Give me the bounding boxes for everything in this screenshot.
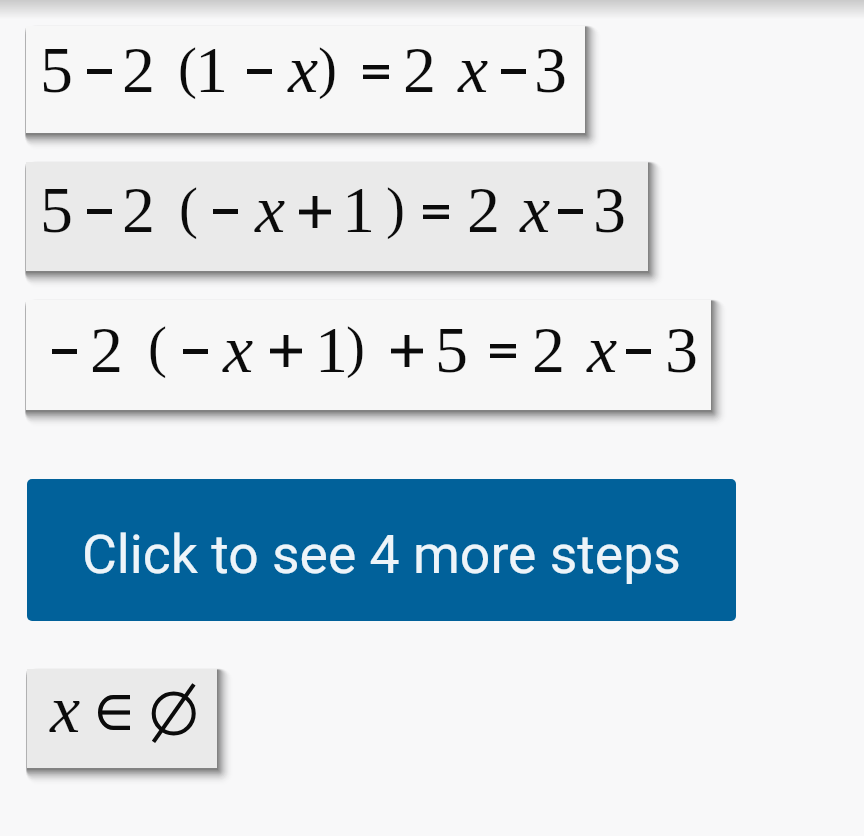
staticText: x: [587, 311, 618, 386]
staticText: (: [179, 176, 198, 239]
button[interactable]: 2: [26, 300, 711, 410]
staticText: ): [386, 176, 405, 239]
staticText: 3: [534, 33, 567, 106]
button[interactable]: 5: [26, 26, 585, 133]
staticText: x: [458, 31, 489, 106]
other: element of: [98, 687, 130, 747]
staticText: 5: [40, 33, 73, 106]
staticText: (: [148, 315, 167, 378]
staticText: 2: [122, 173, 155, 246]
other: empty set: [151, 675, 207, 761]
button[interactable]: x: [27, 669, 217, 768]
staticText: x: [520, 171, 551, 246]
staticText: x: [50, 671, 81, 746]
staticText: 3: [593, 173, 626, 246]
staticText: 5: [435, 313, 468, 386]
staticText: 1: [342, 173, 375, 246]
staticText: 2: [403, 33, 436, 106]
staticText: ): [346, 315, 365, 378]
button[interactable]: Click to see 4 more steps: [27, 479, 736, 621]
staticText: 2: [90, 313, 123, 386]
staticText: x: [255, 171, 286, 246]
staticText: 2: [467, 173, 500, 246]
button[interactable]: 5: [26, 162, 648, 271]
staticText: Click to see 4 more steps: [82, 523, 681, 586]
staticText: 1: [195, 33, 228, 106]
staticText: x: [288, 31, 319, 106]
staticText: 5: [40, 173, 73, 246]
staticText: 2: [532, 313, 565, 386]
staticText: 2: [122, 33, 155, 106]
staticText: x: [223, 311, 254, 386]
staticText: (: [178, 36, 197, 99]
staticText: 1: [315, 313, 348, 386]
staticText: ): [318, 36, 337, 99]
staticText: 3: [665, 313, 698, 386]
